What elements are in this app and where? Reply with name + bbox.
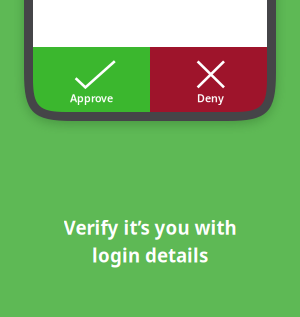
button[interactable]: Approve	[33, 47, 150, 112]
staticText: Approve	[70, 91, 113, 105]
staticText: Deny	[197, 91, 224, 105]
staticText: Verify it’s you with	[63, 215, 236, 240]
staticText: login details	[92, 243, 208, 268]
button[interactable]: Deny	[150, 47, 267, 112]
